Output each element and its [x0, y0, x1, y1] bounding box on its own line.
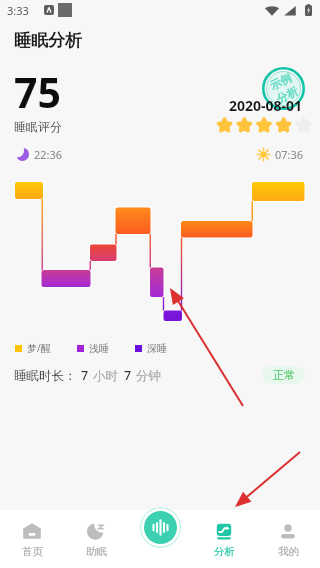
staticText: 首页 [22, 545, 43, 558]
staticText: 示例 [268, 70, 294, 93]
button[interactable]: 助眠 [64, 510, 128, 568]
staticText: 分析 [274, 84, 300, 106]
button[interactable]: 正常 [262, 366, 305, 384]
staticText: 深睡 [147, 342, 167, 355]
staticText: 3:33 [7, 3, 29, 18]
staticText: 2020-08-01 [229, 96, 303, 115]
staticText: 分钟 [136, 368, 161, 384]
staticText: 07:36 [275, 147, 304, 162]
button[interactable]: Start sleep recording [140, 507, 181, 548]
staticText: 22:36 [34, 147, 63, 162]
button[interactable]: 我的 [256, 510, 320, 568]
staticText: 睡眠时长： [14, 368, 77, 384]
staticText: 7 [81, 367, 89, 384]
staticText: 我的 [278, 545, 299, 558]
button[interactable]: 首页 [0, 510, 64, 568]
staticText: 75 [14, 64, 61, 120]
staticText: 浅睡 [89, 342, 109, 355]
staticText: 睡眠分析 [14, 30, 82, 51]
staticText: 睡眠评分 [14, 119, 62, 134]
staticText: 梦/醒 [27, 341, 51, 355]
staticText: 正常 [273, 368, 295, 382]
staticText: 助眠 [86, 545, 107, 558]
button[interactable]: 分析 [192, 510, 256, 568]
staticText: 7 [124, 367, 132, 384]
staticText: 小时 [93, 368, 118, 384]
staticText: 分析 [214, 545, 235, 558]
